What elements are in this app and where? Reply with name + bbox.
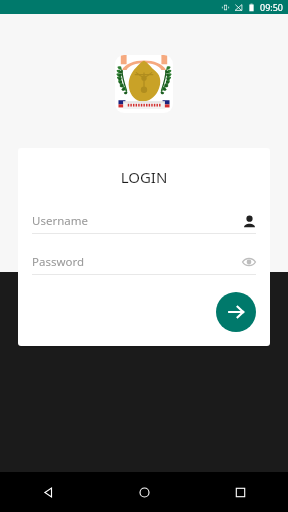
staticText: Password: [32, 254, 85, 270]
staticText: LOGIN: [18, 167, 270, 187]
button[interactable]: Back: [0, 472, 96, 512]
staticText: 09:50: [260, 1, 284, 13]
button[interactable]: Username: [18, 209, 270, 234]
button[interactable]: Sign in: [216, 292, 256, 332]
button[interactable]: Password: [18, 250, 270, 275]
button[interactable]: Recents: [192, 472, 288, 512]
button[interactable]: Home: [96, 472, 192, 512]
other: Account: [243, 215, 256, 228]
staticText: Username: [32, 213, 88, 229]
button[interactable]: Show password: [242, 255, 256, 269]
